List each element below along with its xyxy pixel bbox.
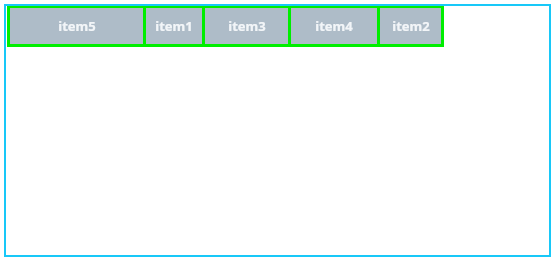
button[interactable]: item3	[205, 8, 288, 44]
button[interactable]: item1	[146, 8, 202, 44]
staticText: item2	[392, 17, 430, 35]
button[interactable]: item4	[291, 8, 377, 44]
staticText: item4	[315, 17, 353, 35]
staticText: item5	[58, 17, 96, 35]
staticText: item3	[228, 17, 266, 35]
staticText: item1	[155, 17, 193, 35]
button[interactable]: item5	[10, 8, 143, 44]
button[interactable]: item2	[380, 8, 441, 44]
